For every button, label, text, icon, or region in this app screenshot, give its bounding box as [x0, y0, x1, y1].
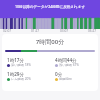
staticText: 0分 [55, 71, 63, 77]
staticText: 4時間44分 [55, 57, 77, 63]
staticText: 03:07 [60, 29, 69, 33]
staticText: 06:27 [88, 29, 97, 33]
staticText: 浅い睡眠 67% [59, 63, 79, 67]
staticText: 10時以降のデータが24時間に反映されます [0, 4, 100, 9]
staticText: 01:27 [31, 29, 40, 33]
staticText: レム睡眠 20% [11, 77, 32, 81]
staticText: 1時17分 [7, 57, 25, 63]
staticText: 1時29分 [7, 71, 25, 77]
staticText: 深い睡眠 18% [11, 63, 31, 67]
staticText: 覚醒時間 [59, 77, 72, 81]
staticText: 7時間00分 [2, 38, 98, 46]
staticText: 02:07 [3, 29, 12, 33]
